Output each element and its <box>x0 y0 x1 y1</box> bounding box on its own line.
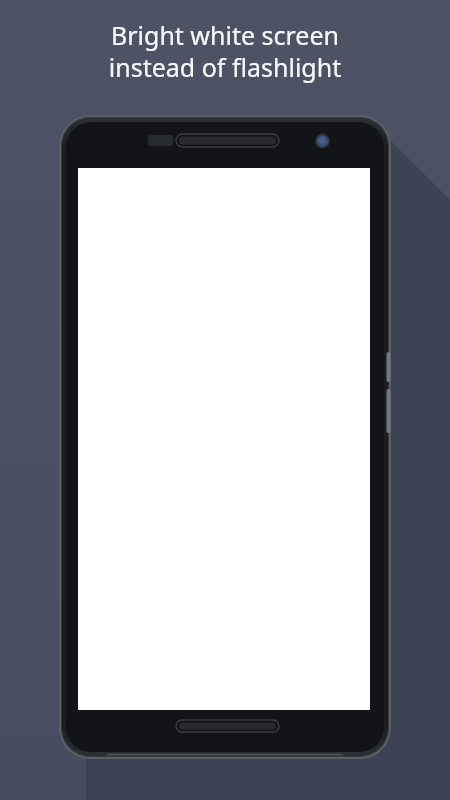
staticText: Bright white screen instead of flashligh… <box>30 18 420 84</box>
button[interactable]: Bright white screen instead of flashligh… <box>0 18 450 84</box>
